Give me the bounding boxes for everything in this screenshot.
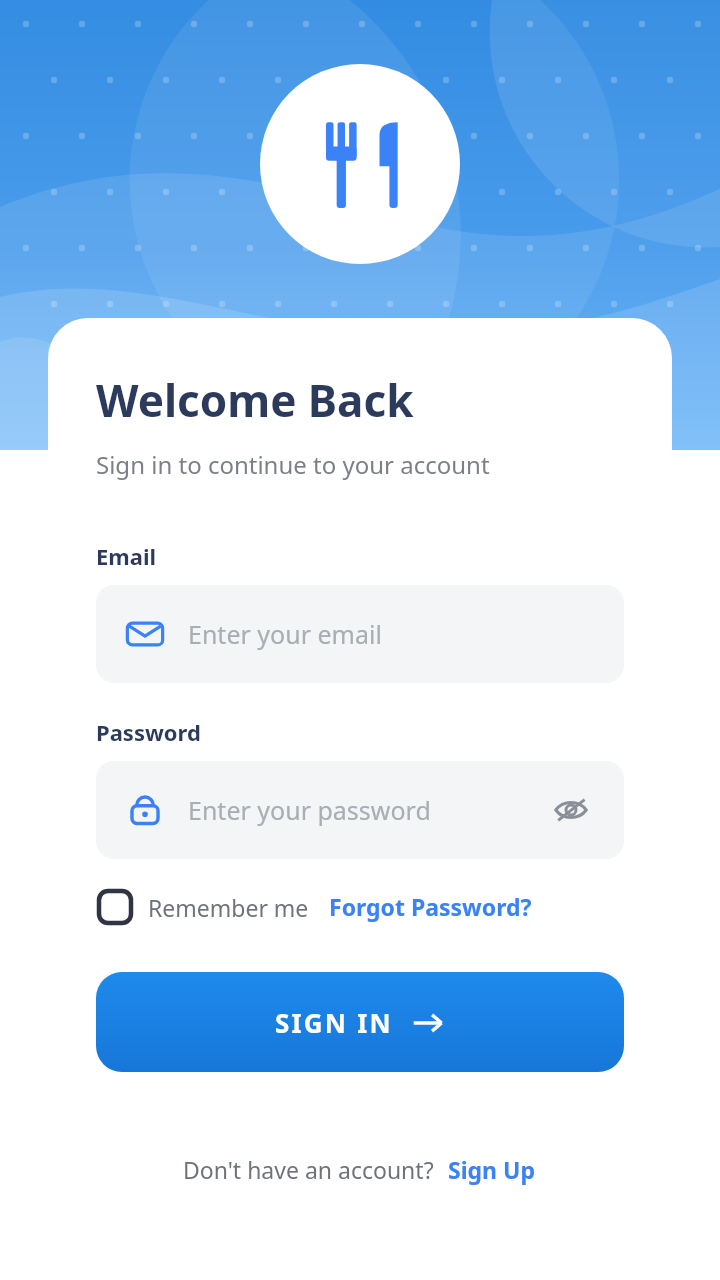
staticText: Sign in to continue to your account [96,448,490,481]
staticText: Password [96,717,201,747]
button[interactable]: SIGN IN [96,972,624,1072]
button[interactable]: Enter your email [96,585,624,683]
staticText: Enter your password [188,793,431,827]
button[interactable]: Enter your password [96,761,624,859]
staticText: Enter your email [188,617,382,651]
staticText: Remember me [148,892,309,923]
staticText: Don't have an account? [183,1154,434,1185]
staticText: Email [96,541,157,571]
staticText: Forgot Password? [329,891,532,922]
button[interactable]: Remember me [96,888,309,926]
staticText: Welcome Back [96,370,414,430]
button[interactable]: Sign Up [446,1150,537,1189]
button[interactable]: Show password [546,785,596,835]
staticText: SIGN IN [275,1005,393,1040]
button[interactable]: Forgot Password? [327,887,534,926]
staticText: Sign Up [448,1154,535,1185]
